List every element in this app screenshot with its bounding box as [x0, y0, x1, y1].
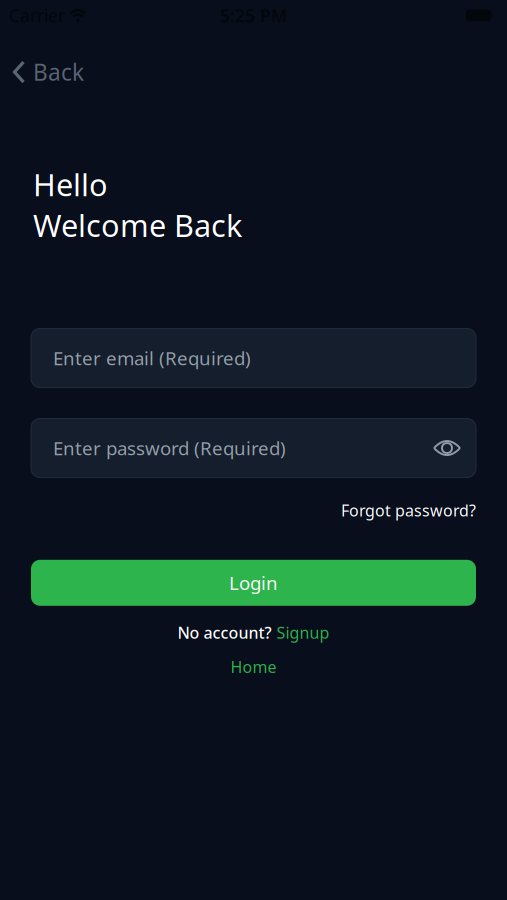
button[interactable]: Signup: [276, 622, 329, 643]
button[interactable]: Back: [12, 57, 84, 87]
staticText: Back: [33, 57, 84, 87]
staticText: No account?: [177, 622, 271, 643]
button[interactable]: Enter password (Required): [31, 419, 476, 478]
button[interactable]: Forgot password?: [341, 500, 476, 521]
button[interactable]: Show password: [433, 438, 461, 458]
staticText: Carrier: [9, 4, 65, 27]
staticText: Signup: [276, 622, 329, 643]
staticText: Home: [230, 656, 276, 677]
staticText: Forgot password?: [341, 500, 476, 521]
staticText: Hello Welcome Back: [33, 164, 242, 245]
staticText: Enter email (Required): [53, 346, 251, 370]
button[interactable]: Home: [230, 656, 276, 677]
button[interactable]: Enter email (Required): [31, 329, 476, 388]
staticText: 5:25 PM: [220, 4, 287, 27]
staticText: Login: [229, 570, 278, 595]
button[interactable]: Login: [31, 560, 476, 606]
staticText: Enter password (Required): [53, 436, 286, 460]
